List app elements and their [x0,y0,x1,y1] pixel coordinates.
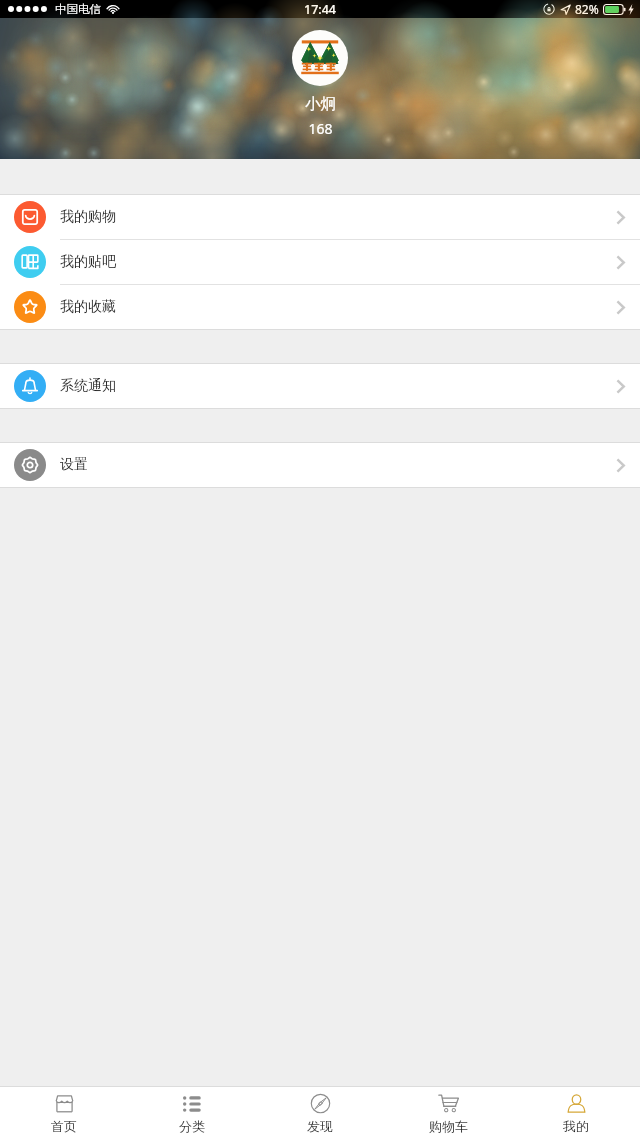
staticText: 我的 [563,1118,589,1134]
button[interactable]: 我的购物 [0,195,640,239]
staticText: 系统通知 [60,377,116,395]
button[interactable]: 首页 [0,1087,128,1136]
button[interactable]: 我的 [512,1087,640,1136]
button[interactable]: 分类 [128,1087,256,1136]
button[interactable]: 我的贴吧 [0,240,640,284]
staticText: 中国电信 [55,2,101,16]
button[interactable]: 系统通知 [0,364,640,408]
staticText: 168 [308,119,333,138]
button[interactable]: 购物车 [384,1087,512,1136]
staticText: 发现 [307,1118,333,1134]
staticText: 小炯 [305,94,336,114]
button[interactable]: 设置 [0,443,640,487]
staticText: 82% [575,1,599,17]
staticText: 我的贴吧 [60,253,116,271]
staticText: 首页 [51,1118,77,1134]
button[interactable]: Profile avatar [292,30,348,86]
staticText: 分类 [179,1118,205,1134]
staticText: 购物车 [429,1118,468,1134]
staticText: 设置 [60,456,88,474]
button[interactable]: 我的收藏 [0,285,640,329]
staticText: 我的收藏 [60,298,116,316]
staticText: 17:44 [304,1,337,18]
button[interactable]: 发现 [256,1087,384,1136]
staticText: 我的购物 [60,208,116,226]
